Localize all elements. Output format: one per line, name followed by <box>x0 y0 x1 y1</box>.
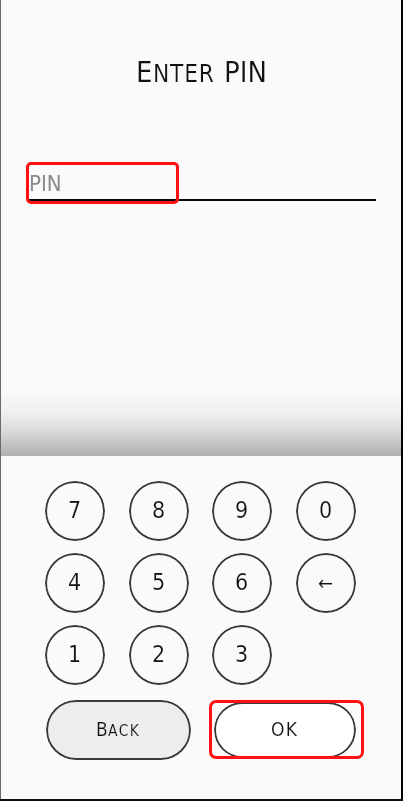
staticText: E <box>136 55 153 89</box>
button[interactable]: 3 <box>212 625 272 685</box>
button[interactable]: 2 <box>129 625 189 685</box>
button[interactable]: B <box>46 700 191 760</box>
staticText: 9 <box>235 497 249 524</box>
button[interactable]: 4 <box>45 553 105 613</box>
staticText: PIN <box>29 171 62 197</box>
staticText: 7 <box>68 497 82 524</box>
button[interactable]: 8 <box>129 481 189 541</box>
staticText: 5 <box>152 569 166 596</box>
button[interactable]: 6 <box>212 553 272 613</box>
staticText: ← <box>318 571 334 594</box>
staticText: OK <box>271 718 299 740</box>
staticText: 2 <box>152 641 166 668</box>
button[interactable]: 9 <box>212 481 272 541</box>
button[interactable]: 0 <box>296 481 356 541</box>
staticText: 8 <box>152 497 166 524</box>
staticText: 3 <box>235 641 249 668</box>
staticText: B <box>96 718 108 740</box>
staticText: 6 <box>235 569 249 596</box>
staticText: 4 <box>68 569 82 596</box>
button[interactable]: 5 <box>129 553 189 613</box>
staticText: ACK <box>108 722 141 740</box>
staticText: NTER <box>153 60 215 88</box>
staticText: PIN <box>224 55 267 89</box>
button[interactable]: 1 <box>45 625 105 685</box>
staticText: 0 <box>319 497 333 524</box>
button[interactable]: Backspace <box>296 553 356 613</box>
button[interactable]: 7 <box>45 481 105 541</box>
staticText: 1 <box>68 641 82 668</box>
button[interactable]: OK <box>214 702 356 758</box>
